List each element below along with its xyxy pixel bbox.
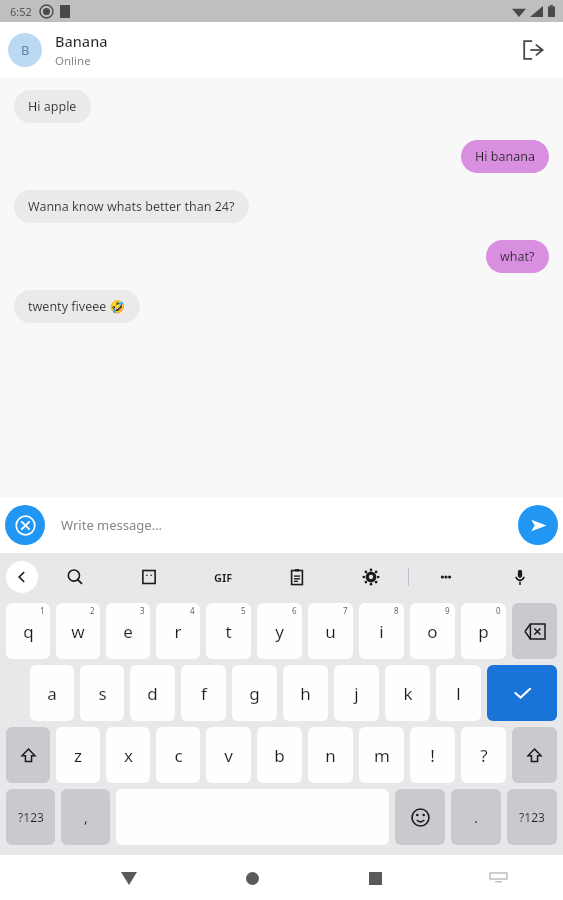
button[interactable]: d xyxy=(130,665,175,721)
button[interactable]: ?123 xyxy=(6,789,55,845)
staticText: Online xyxy=(55,53,91,69)
staticText: b xyxy=(274,744,285,767)
staticText: q xyxy=(23,620,34,643)
staticText: twenty fiveee 🤣 xyxy=(28,298,126,315)
staticText: e xyxy=(123,620,133,643)
button[interactable]: Clear xyxy=(5,505,45,545)
button[interactable]: j xyxy=(334,665,379,721)
button[interactable]: twenty fiveee 🤣 xyxy=(14,290,140,323)
button[interactable]: Enter xyxy=(487,665,557,721)
button[interactable]: Write message... xyxy=(61,516,518,534)
button[interactable]: w xyxy=(56,603,100,659)
button[interactable]: Switch keyboard xyxy=(476,856,520,900)
button[interactable]: a xyxy=(30,665,74,721)
button[interactable]: i xyxy=(359,603,404,659)
button[interactable]: q xyxy=(6,603,50,659)
button[interactable]: Shift xyxy=(6,727,50,783)
staticText: Hi apple xyxy=(28,98,77,115)
button[interactable]: Hi banana xyxy=(461,140,549,173)
button[interactable]: l xyxy=(436,665,481,721)
button[interactable]: Back xyxy=(107,856,151,900)
button[interactable]: x xyxy=(106,727,150,783)
button[interactable]: Emoji xyxy=(395,789,445,845)
button[interactable]: h xyxy=(283,665,328,721)
staticText: 4 xyxy=(190,605,195,616)
button[interactable]: Settings xyxy=(354,560,388,594)
staticText: s xyxy=(98,682,107,705)
staticText: 8 xyxy=(394,605,399,616)
staticText: j xyxy=(354,682,359,705)
button[interactable]: m xyxy=(359,727,404,783)
button[interactable]: Clipboard xyxy=(280,560,314,594)
button[interactable]: Stickers xyxy=(132,560,166,594)
button[interactable]: Hi apple xyxy=(14,90,91,123)
button[interactable]: u xyxy=(308,603,353,659)
staticText: p xyxy=(478,620,489,643)
button[interactable]: , xyxy=(61,789,110,845)
staticText: ? xyxy=(480,744,488,767)
staticText: g xyxy=(249,682,260,705)
staticText: what? xyxy=(500,248,535,265)
button[interactable]: Shift xyxy=(512,727,557,783)
staticText: o xyxy=(427,620,438,643)
staticText: 9 xyxy=(445,605,450,616)
button[interactable]: what? xyxy=(486,240,549,273)
staticText: Wanna know whats better than 24? xyxy=(28,198,235,215)
staticText: 2 xyxy=(90,605,95,616)
button[interactable]: p xyxy=(461,603,506,659)
staticText: 6:52 xyxy=(10,4,32,19)
staticText: 5 xyxy=(241,605,246,616)
button[interactable]: Backspace xyxy=(512,603,557,659)
staticText: u xyxy=(325,620,336,643)
button[interactable]: e xyxy=(106,603,150,659)
button[interactable]: n xyxy=(308,727,353,783)
staticText: y xyxy=(275,620,284,643)
button[interactable]: o xyxy=(410,603,455,659)
button[interactable]: Logout xyxy=(511,28,555,72)
button[interactable]: Home xyxy=(230,856,274,900)
button[interactable]: Search xyxy=(58,560,92,594)
button[interactable]: c xyxy=(156,727,200,783)
staticText: . xyxy=(474,808,478,827)
staticText: ?123 xyxy=(18,809,44,825)
button[interactable]: y xyxy=(257,603,302,659)
button[interactable]: Recent apps xyxy=(353,856,397,900)
button[interactable]: Voice input xyxy=(503,560,537,594)
button[interactable]: Wanna know whats better than 24? xyxy=(14,190,249,223)
button[interactable]: . xyxy=(451,789,501,845)
button[interactable]: s xyxy=(80,665,124,721)
button[interactable]: Send xyxy=(518,505,558,545)
button[interactable]: b xyxy=(257,727,302,783)
staticText: GIF xyxy=(214,570,233,585)
button[interactable]: r xyxy=(156,603,200,659)
button[interactable]: k xyxy=(385,665,430,721)
staticText: 6 xyxy=(292,605,297,616)
button[interactable]: v xyxy=(206,727,251,783)
button[interactable]: GIF xyxy=(203,562,243,592)
button[interactable]: ?123 xyxy=(507,789,557,845)
staticText: w xyxy=(71,620,85,643)
staticText: m xyxy=(374,744,390,767)
staticText: ! xyxy=(430,744,435,767)
staticText: 3 xyxy=(140,605,145,616)
staticText: t xyxy=(225,620,232,643)
staticText: B xyxy=(21,41,30,59)
button[interactable]: t xyxy=(206,603,251,659)
button[interactable]: g xyxy=(232,665,277,721)
staticText: z xyxy=(74,744,82,767)
button[interactable]: ? xyxy=(461,727,506,783)
staticText: l xyxy=(456,682,461,705)
staticText: 1 xyxy=(40,605,45,616)
button[interactable]: More xyxy=(429,560,463,594)
staticText: ?123 xyxy=(519,809,545,825)
button[interactable]: z xyxy=(56,727,100,783)
button[interactable]: f xyxy=(181,665,226,721)
staticText: v xyxy=(224,744,233,767)
staticText: f xyxy=(201,682,207,705)
button[interactable]: Back xyxy=(6,561,38,593)
staticText: i xyxy=(379,620,384,643)
staticText: a xyxy=(47,682,57,705)
staticText: x xyxy=(124,744,133,767)
button[interactable]: ! xyxy=(410,727,455,783)
